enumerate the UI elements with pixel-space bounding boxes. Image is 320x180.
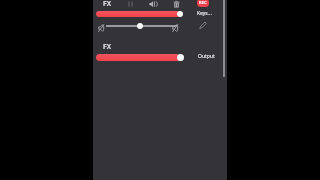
button[interactable]: FX: [100, 43, 124, 52]
staticText: FX: [103, 0, 111, 8]
button[interactable]: REC: [197, 0, 209, 7]
button[interactable]: FX: [100, 0, 124, 9]
button[interactable]: Pan left: [98, 24, 108, 33]
button[interactable]: [96, 54, 180, 61]
button[interactable]: Keys...: [197, 10, 221, 18]
staticText: Keys...: [197, 10, 212, 17]
button[interactable]: Volume: [148, 0, 160, 9]
staticText: Output: [198, 53, 215, 60]
button[interactable]: [137, 23, 143, 29]
button[interactable]: Output: [198, 53, 222, 61]
staticText: REC: [199, 0, 207, 6]
staticText: FX: [103, 42, 111, 51]
button[interactable]: Pan right: [172, 24, 182, 33]
button[interactable]: Edit: [198, 20, 210, 31]
button[interactable]: Delete: [172, 0, 182, 9]
button[interactable]: [96, 11, 180, 17]
button[interactable]: Pause: [125, 0, 137, 9]
